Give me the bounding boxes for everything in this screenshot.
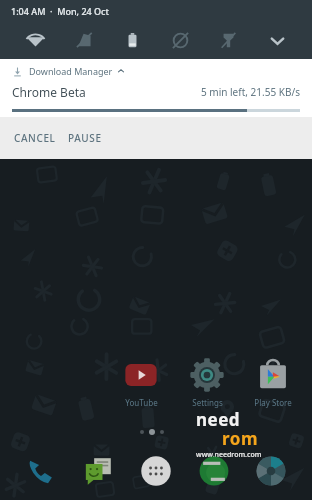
staticText: Chrome Beta [12, 84, 86, 100]
button[interactable]: Settings [178, 358, 236, 408]
staticText: rom [222, 427, 258, 450]
button[interactable]: Play Store [244, 358, 302, 408]
button[interactable]: Messaging [75, 448, 121, 494]
button[interactable]: Hangouts [191, 448, 237, 494]
button[interactable]: CANCEL [12, 125, 58, 151]
button[interactable]: PAUSE [66, 125, 104, 151]
button[interactable]: Wi-Fi [16, 22, 54, 59]
staticText: YouTube [125, 397, 158, 408]
button[interactable]: YouTube [112, 358, 170, 408]
staticText: Settings [192, 397, 223, 408]
staticText: 5 min left, 21.55 KB/s [201, 85, 300, 99]
button[interactable]: Mobile data off [65, 22, 103, 59]
staticText: CANCEL [14, 131, 56, 145]
staticText: 1:04 AM · Mon, 24 Oct [11, 5, 109, 17]
staticText: PAUSE [68, 131, 102, 145]
button[interactable]: Camera [248, 448, 294, 494]
button[interactable]: Battery [113, 22, 151, 59]
button[interactable]: Phone [18, 448, 64, 494]
button[interactable]: Apps [133, 448, 179, 494]
button[interactable]: Do not disturb off [161, 22, 199, 59]
staticText: www.needrom.com [196, 450, 262, 460]
button[interactable]: Expand quick settings [258, 22, 296, 59]
staticText: Play Store [254, 397, 292, 408]
button[interactable]: Download Manager [0, 59, 312, 117]
staticText: Download Manager [29, 65, 113, 77]
button[interactable]: Flashlight off [209, 22, 247, 59]
staticText: need [196, 408, 241, 431]
